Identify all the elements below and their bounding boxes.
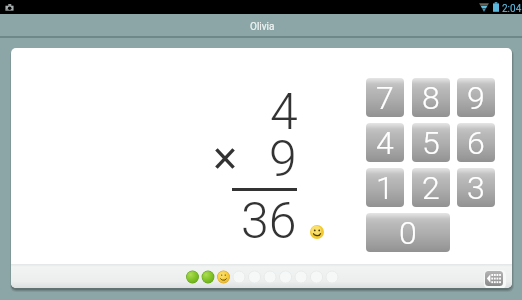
button[interactable]: 2 [412, 168, 450, 207]
staticText: 0 [399, 214, 417, 252]
staticText: 1 [376, 169, 394, 207]
button[interactable]: Hide keyboard [485, 271, 503, 286]
button[interactable]: 8 [412, 78, 450, 117]
button[interactable]: 0 [366, 213, 450, 252]
staticText: 8 [422, 79, 440, 117]
button[interactable]: 5 [412, 123, 450, 162]
staticText: 2 [422, 169, 440, 207]
button[interactable]: Answer 36 [232, 192, 297, 240]
staticText: 4 [270, 83, 298, 142]
button[interactable]: 4 [366, 123, 404, 162]
staticText: 6 [467, 124, 485, 162]
staticText: 7 [376, 79, 394, 117]
staticText: 9 [467, 79, 485, 117]
staticText: 36 [241, 192, 297, 240]
staticText: Olivia [250, 21, 275, 33]
staticText: 5 [422, 124, 440, 162]
button[interactable]: 1 [366, 168, 404, 207]
staticText: 9 [269, 130, 297, 189]
staticText: 3 [467, 169, 485, 207]
button[interactable]: 6 [457, 123, 495, 162]
button[interactable]: 9 [457, 78, 495, 117]
button[interactable]: 3 [457, 168, 495, 207]
button[interactable]: 7 [366, 78, 404, 117]
staticText: 2:04 [502, 3, 522, 15]
other: Screenshot [5, 3, 14, 12]
staticText: 4 [376, 124, 394, 162]
